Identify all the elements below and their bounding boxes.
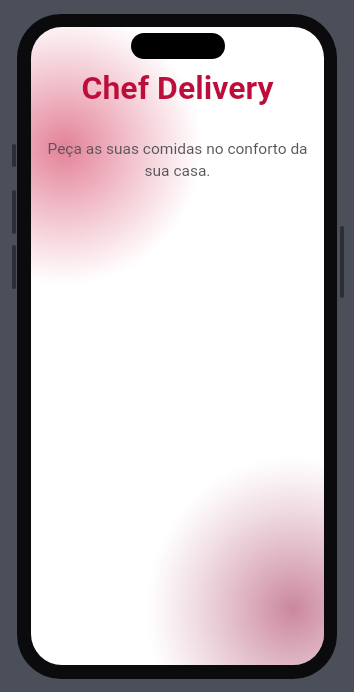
button[interactable]: Chef Delivery	[81, 69, 274, 107]
staticText: Peça as suas comidas no conforto da sua …	[45, 140, 310, 180]
